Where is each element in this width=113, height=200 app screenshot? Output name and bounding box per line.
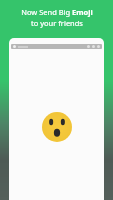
button[interactable]: Astonished face emoji bbox=[42, 112, 72, 142]
button[interactable]: Search bar bbox=[9, 38, 104, 200]
staticText: to your friends bbox=[31, 18, 83, 28]
button[interactable]: Search bar bbox=[11, 44, 102, 49]
staticText: Now Send Big Emoji bbox=[21, 7, 93, 17]
